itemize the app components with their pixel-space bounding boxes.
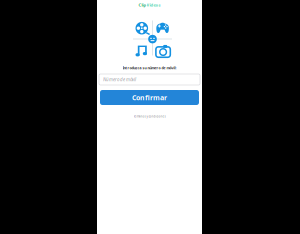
button[interactable]: Confirmar: [100, 90, 199, 105]
staticText: Número de móvil: [103, 76, 136, 82]
staticText: Términos y condiciones: [133, 115, 165, 118]
staticText: Vídeos: [146, 2, 160, 8]
staticText: Introduzca su número de móvil:: [122, 66, 176, 70]
staticText: Confirmar: [132, 93, 167, 102]
button[interactable]: Términos y condiciones: [97, 114, 202, 119]
staticText: Clip: [138, 2, 146, 8]
